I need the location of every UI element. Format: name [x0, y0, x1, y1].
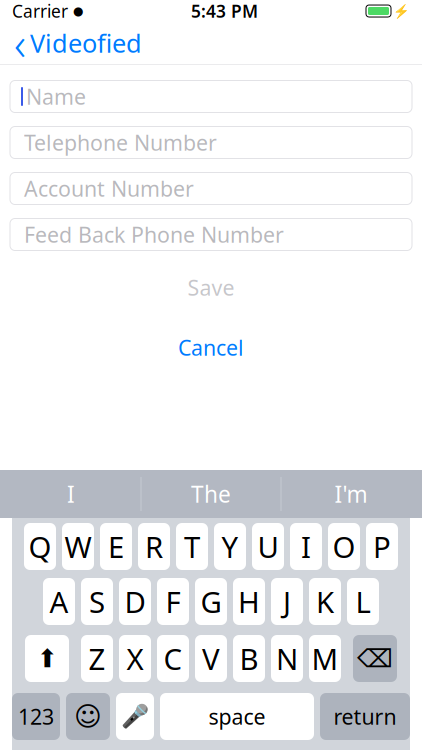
staticText: ⌫: [357, 644, 393, 673]
staticText: Save: [187, 273, 234, 302]
button[interactable]: I: [1, 470, 140, 518]
staticText: ⬆: [36, 644, 57, 673]
button[interactable]: Z: [81, 635, 113, 682]
staticText: 5:43 PM: [191, 0, 258, 22]
button[interactable]: M: [309, 635, 341, 682]
staticText: L: [355, 582, 370, 621]
staticText: 🎤: [121, 704, 149, 729]
button[interactable]: E: [100, 523, 132, 570]
staticText: V: [202, 639, 220, 678]
button[interactable]: W: [62, 523, 94, 570]
button[interactable]: Cancel: [10, 332, 412, 362]
button[interactable]: Delete: [353, 635, 397, 682]
button[interactable]: H: [233, 578, 265, 625]
button[interactable]: S: [81, 578, 113, 625]
staticText: return: [333, 702, 396, 731]
staticText: Videofied: [30, 26, 142, 60]
button[interactable]: ‹: [0, 22, 152, 64]
button[interactable]: I: [290, 523, 322, 570]
button[interactable]: V: [195, 635, 227, 682]
button[interactable]: U: [252, 523, 284, 570]
staticText: Account Number: [24, 174, 194, 203]
button[interactable]: Save: [10, 272, 412, 302]
button[interactable]: Q: [24, 523, 56, 570]
button[interactable]: B: [233, 635, 265, 682]
button[interactable]: A: [43, 578, 75, 625]
staticText: Telephone Number: [24, 128, 217, 157]
button[interactable]: Shift: [25, 635, 69, 682]
staticText: space: [208, 702, 265, 731]
staticText: P: [373, 527, 391, 566]
staticText: D: [124, 582, 145, 621]
staticText: J: [283, 582, 291, 621]
button[interactable]: R: [138, 523, 170, 570]
staticText: B: [239, 639, 258, 678]
staticText: F: [165, 582, 180, 621]
button[interactable]: J: [271, 578, 303, 625]
staticText: Z: [88, 639, 105, 678]
staticText: Feed Back Phone Number: [24, 220, 284, 249]
staticText: I'm: [334, 479, 367, 509]
button[interactable]: F: [157, 578, 189, 625]
staticText: W: [64, 527, 91, 566]
button[interactable]: return: [320, 693, 410, 740]
button[interactable]: O: [328, 523, 360, 570]
button[interactable]: The: [141, 470, 280, 518]
staticText: Name: [26, 82, 86, 111]
staticText: A: [49, 582, 68, 621]
staticText: K: [316, 582, 334, 621]
staticText: N: [276, 639, 298, 678]
staticText: O: [332, 527, 355, 566]
button[interactable]: space: [160, 693, 314, 740]
staticText: I: [301, 527, 311, 566]
staticText: M: [311, 639, 338, 678]
staticText: ⚡: [393, 3, 410, 19]
button[interactable]: P: [366, 523, 398, 570]
button[interactable]: L: [347, 578, 379, 625]
button[interactable]: X: [119, 635, 151, 682]
button[interactable]: 123: [12, 693, 60, 740]
button[interactable]: Dictation: [116, 693, 154, 740]
staticText: S: [89, 582, 105, 621]
staticText: I: [67, 479, 75, 509]
staticText: ‹: [14, 13, 26, 73]
staticText: E: [108, 527, 124, 566]
staticText: T: [184, 527, 200, 566]
staticText: G: [200, 582, 221, 621]
staticText: 123: [18, 702, 54, 731]
staticText: The: [191, 479, 231, 509]
staticText: H: [238, 582, 260, 621]
button[interactable]: K: [309, 578, 341, 625]
staticText: X: [126, 639, 143, 678]
staticText: ●: [73, 4, 83, 18]
staticText: R: [145, 527, 163, 566]
button[interactable]: C: [157, 635, 189, 682]
button[interactable]: T: [176, 523, 208, 570]
staticText: C: [163, 639, 182, 678]
staticText: ☺: [74, 701, 102, 732]
button[interactable]: I'm: [281, 470, 420, 518]
staticText: U: [257, 527, 278, 566]
staticText: Cancel: [178, 333, 244, 362]
button[interactable]: N: [271, 635, 303, 682]
staticText: Carrier: [12, 0, 68, 22]
button[interactable]: Y: [214, 523, 246, 570]
button[interactable]: Emoji: [66, 693, 110, 740]
button[interactable]: G: [195, 578, 227, 625]
staticText: Y: [221, 527, 238, 566]
button[interactable]: D: [119, 578, 151, 625]
staticText: Q: [28, 527, 51, 566]
